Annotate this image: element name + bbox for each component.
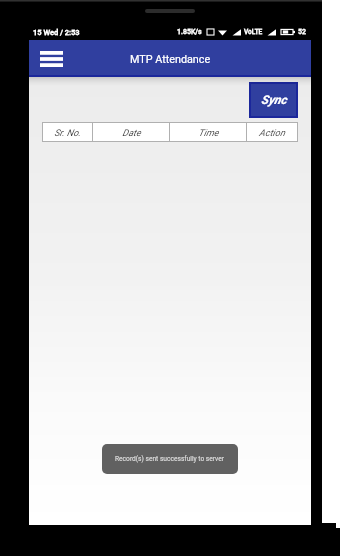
staticText: 52 bbox=[298, 28, 306, 36]
staticText: Record(s) sent successfully to server bbox=[115, 455, 225, 463]
staticText: MTP Attendance bbox=[130, 53, 211, 66]
button[interactable]: Open navigation menu bbox=[38, 46, 64, 72]
staticText: VoLTE bbox=[244, 28, 263, 36]
staticText: Sr. No. bbox=[54, 127, 81, 138]
staticText: 15 Wed / 2:53 bbox=[33, 28, 80, 37]
staticText: Date bbox=[122, 127, 141, 138]
staticText: Time bbox=[198, 127, 219, 138]
staticText: 1.85K/s bbox=[177, 28, 202, 36]
button[interactable]: Sync bbox=[251, 84, 296, 116]
staticText: Action bbox=[259, 127, 285, 138]
staticText: Sync bbox=[261, 93, 287, 107]
